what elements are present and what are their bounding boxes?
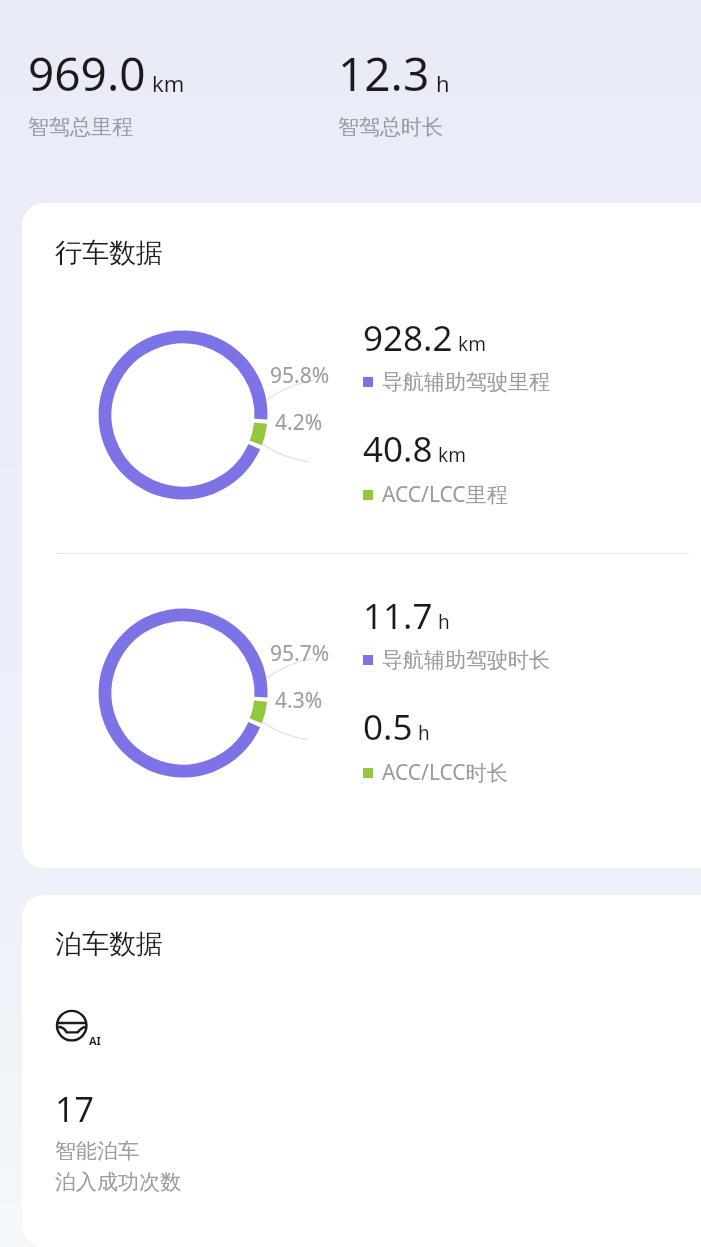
- staticText: 17: [55, 1086, 94, 1132]
- staticText: 智驾总里程: [28, 114, 133, 140]
- staticText: 95.7%: [270, 639, 330, 668]
- staticText: 导航辅助驾驶里程: [382, 369, 550, 395]
- button[interactable]: 行车数据: [22, 203, 701, 868]
- staticText: 11.7: [363, 592, 433, 640]
- staticText: km: [438, 442, 466, 468]
- staticText: 4.2%: [275, 408, 323, 437]
- staticText: km: [152, 68, 185, 98]
- staticText: ACC/LCC里程: [382, 480, 508, 509]
- staticText: h: [438, 609, 450, 635]
- staticText: ACC/LCC时长: [382, 758, 508, 787]
- staticText: 行车数据: [55, 236, 163, 270]
- staticText: h: [418, 720, 430, 746]
- staticText: 95.8%: [270, 361, 330, 390]
- staticText: h: [436, 68, 450, 98]
- staticText: 969.0: [28, 42, 146, 105]
- staticText: 泊入成功次数: [55, 1169, 181, 1195]
- other: 智能泊车 AI: [55, 1008, 99, 1052]
- button[interactable]: 泊车数据: [22, 895, 701, 1247]
- staticText: 智驾总时长: [338, 114, 443, 140]
- staticText: 40.8: [363, 425, 433, 473]
- staticText: 泊车数据: [55, 927, 163, 961]
- staticText: 导航辅助驾驶时长: [382, 647, 550, 673]
- staticText: 4.3%: [275, 686, 323, 715]
- staticText: AI: [89, 1033, 101, 1048]
- staticText: km: [458, 331, 486, 357]
- staticText: 12.3: [338, 42, 430, 105]
- staticText: 0.5: [363, 703, 413, 751]
- staticText: 智能泊车: [55, 1138, 139, 1164]
- staticText: 928.2: [363, 314, 453, 362]
